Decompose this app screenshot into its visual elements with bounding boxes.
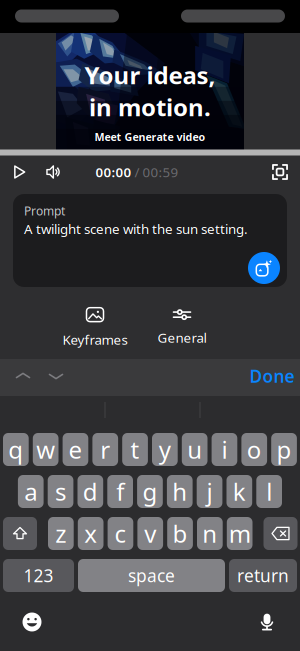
- staticText: g: [142, 476, 157, 507]
- staticText: Meet Generate video: [94, 130, 205, 144]
- button[interactable]: Keyframes: [55, 307, 135, 349]
- button[interactable]: t: [122, 433, 148, 466]
- staticText: e: [68, 434, 82, 465]
- button[interactable]: 123: [3, 559, 74, 592]
- staticText: a: [24, 476, 37, 507]
- button[interactable]: return: [229, 559, 297, 592]
- button[interactable]: Shift: [3, 517, 37, 550]
- staticText: Prompt: [24, 203, 65, 219]
- button[interactable]: r: [92, 433, 118, 466]
- button[interactable]: w: [33, 433, 58, 466]
- staticText: b: [172, 518, 187, 549]
- button[interactable]: n: [197, 517, 223, 550]
- button[interactable]: space: [78, 559, 225, 592]
- button[interactable]: a: [18, 475, 44, 508]
- staticText: r: [100, 434, 110, 465]
- button[interactable]: o: [241, 433, 267, 466]
- button[interactable]: Next field: [39, 359, 73, 393]
- button[interactable]: k: [226, 475, 252, 508]
- staticText: h: [172, 476, 187, 507]
- button[interactable]: x: [78, 517, 103, 550]
- staticText: p: [277, 434, 292, 465]
- button[interactable]: Done: [240, 359, 300, 393]
- button[interactable]: y: [152, 433, 178, 466]
- staticText: s: [55, 476, 66, 507]
- staticText: in motion.: [89, 91, 211, 123]
- button[interactable]: u: [182, 433, 207, 466]
- staticText: l: [266, 476, 272, 507]
- button[interactable]: Full screen: [264, 157, 296, 187]
- staticText: Your ideas,: [84, 59, 215, 91]
- button[interactable]: Mute: [38, 157, 70, 187]
- button[interactable]: z: [48, 517, 74, 550]
- button[interactable]: Generate: [248, 252, 280, 284]
- staticText: v: [144, 518, 156, 549]
- button[interactable]: c: [108, 517, 133, 550]
- button[interactable]: d: [77, 475, 103, 508]
- staticText: m: [229, 518, 251, 549]
- button[interactable]: s: [48, 475, 73, 508]
- button[interactable]: q: [3, 433, 29, 466]
- staticText: A twilight scene with the sun setting.: [24, 220, 248, 238]
- button[interactable]: b: [167, 517, 193, 550]
- staticText: 123: [23, 564, 53, 587]
- button[interactable]: f: [107, 475, 133, 508]
- staticText: c: [114, 518, 126, 549]
- staticText: x: [84, 518, 97, 549]
- button[interactable]: Dictation: [249, 606, 285, 638]
- staticText: d: [83, 476, 98, 507]
- staticText: f: [116, 476, 124, 507]
- staticText: n: [202, 518, 217, 549]
- button[interactable]: g: [137, 475, 163, 508]
- button[interactable]: General: [142, 307, 222, 349]
- staticText: t: [130, 434, 139, 465]
- staticText: General: [157, 329, 206, 346]
- staticText: w: [36, 434, 55, 465]
- staticText: q: [8, 434, 23, 465]
- staticText: k: [233, 476, 246, 507]
- staticText: z: [55, 518, 66, 549]
- staticText: Done: [249, 364, 294, 387]
- staticText: j: [207, 476, 213, 507]
- staticText: Keyframes: [62, 331, 127, 348]
- button[interactable]: Previous field: [6, 359, 40, 393]
- staticText: i: [221, 434, 227, 465]
- staticText: u: [187, 434, 202, 465]
- staticText: o: [247, 434, 262, 465]
- staticText: y: [159, 434, 171, 465]
- button[interactable]: Emoji keyboard: [14, 606, 50, 638]
- staticText: return: [237, 564, 289, 587]
- button[interactable]: l: [256, 475, 282, 508]
- staticText: / 00:59: [134, 163, 178, 181]
- button[interactable]: Play: [2, 157, 36, 187]
- button[interactable]: Delete: [263, 517, 297, 550]
- button[interactable]: m: [227, 517, 252, 550]
- button[interactable]: e: [63, 433, 88, 466]
- button[interactable]: j: [197, 475, 222, 508]
- button[interactable]: p: [271, 433, 297, 466]
- staticText: space: [128, 564, 175, 587]
- button[interactable]: i: [212, 433, 237, 466]
- button[interactable]: v: [137, 517, 163, 550]
- button[interactable]: h: [167, 475, 193, 508]
- staticText: 00:00: [95, 163, 131, 181]
